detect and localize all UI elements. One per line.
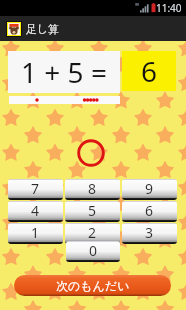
staticText: 1 + 5 = xyxy=(21,53,107,91)
button[interactable]: 足し算 xyxy=(0,16,186,41)
button[interactable]: 6 xyxy=(122,201,177,222)
staticText: 5 xyxy=(88,201,97,220)
button[interactable]: 6 xyxy=(122,51,176,91)
staticText: 2 xyxy=(88,223,97,242)
staticText: 8 xyxy=(88,179,97,198)
staticText: 1 xyxy=(31,223,40,242)
staticText: 6 xyxy=(141,52,158,90)
staticText: 足し算 xyxy=(26,22,60,36)
staticText: 0 xyxy=(89,241,98,260)
button[interactable]: 4 xyxy=(8,201,63,222)
button[interactable]: 7 xyxy=(8,179,63,200)
button[interactable]: 5 xyxy=(65,201,120,222)
staticText: 6 xyxy=(145,201,154,220)
staticText: 9 xyxy=(145,179,154,198)
staticText: 3 xyxy=(145,223,154,242)
button[interactable]: 1 xyxy=(8,223,63,244)
staticText: 4 xyxy=(31,201,40,220)
staticText: 次のもんだい xyxy=(56,278,130,293)
button[interactable]: 0 xyxy=(66,241,120,262)
button[interactable]: 2 xyxy=(65,223,120,244)
button[interactable]: 3 xyxy=(122,223,177,244)
button[interactable]: 8 xyxy=(65,179,120,200)
staticText: 11:40 xyxy=(156,1,182,15)
staticText: 7 xyxy=(31,179,40,198)
button[interactable]: 9 xyxy=(122,179,177,200)
button[interactable]: 次のもんだい xyxy=(14,275,171,296)
